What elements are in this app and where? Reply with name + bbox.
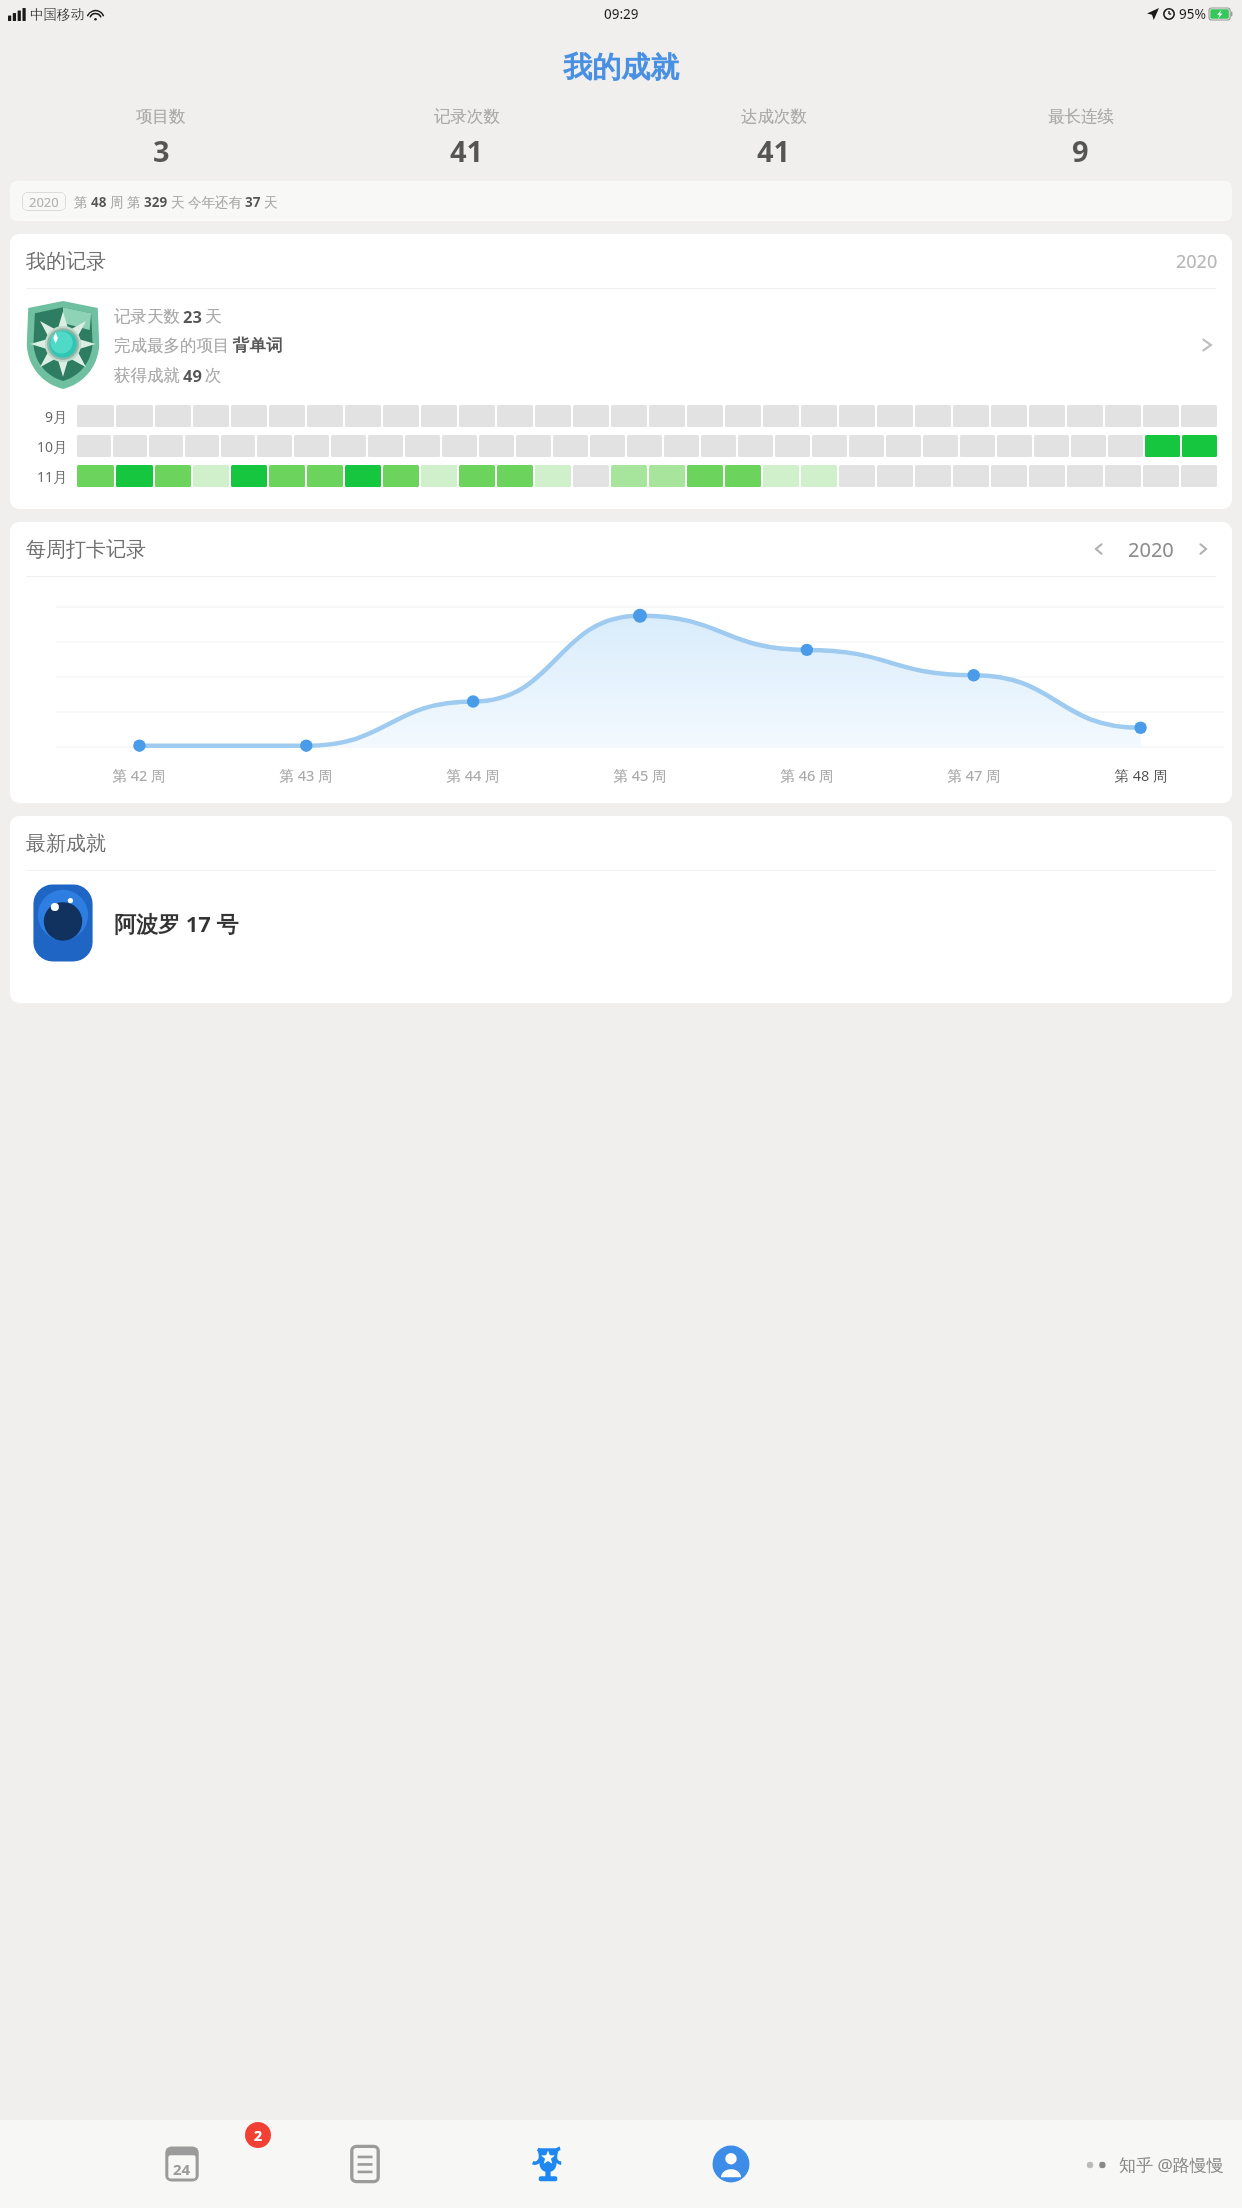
staticText: 记录天数	[114, 306, 180, 327]
staticText: 天	[264, 194, 278, 211]
button[interactable]: 记录天数	[10, 289, 1232, 395]
button[interactable]: 下一年	[1188, 534, 1218, 564]
staticText: 第	[127, 194, 141, 211]
staticText: 第 42 周	[112, 765, 166, 785]
staticText: 知乎 @路慢慢	[1119, 2153, 1224, 2176]
staticText: 10月	[37, 437, 68, 456]
button[interactable]: 达成次数	[620, 106, 927, 170]
staticText: 第 48 周	[1114, 765, 1168, 785]
staticText: 第 44 周	[446, 765, 500, 785]
staticText: 第	[74, 194, 88, 211]
staticText: 我的记录	[26, 249, 106, 274]
button[interactable]: 日历	[90, 2120, 273, 2208]
staticText: 09:29	[604, 5, 639, 23]
staticText: 2020	[1176, 249, 1218, 274]
button[interactable]: 上一年	[1084, 534, 1114, 564]
staticText: 次	[205, 365, 222, 386]
staticText: 95%	[1179, 5, 1206, 23]
staticText: 天	[171, 194, 185, 211]
staticText: 2020	[29, 193, 59, 211]
staticText: 3	[153, 131, 170, 170]
staticText: 49	[183, 364, 202, 386]
staticText: 获得成就	[114, 365, 180, 386]
staticText: 达成次数	[741, 106, 807, 127]
button[interactable]: 清单	[273, 2120, 456, 2208]
button[interactable]: 最长连续	[927, 106, 1234, 170]
button[interactable]: 2020	[10, 181, 1232, 221]
staticText: 完成最多的项目	[114, 335, 230, 356]
staticText: 项目数	[136, 106, 186, 127]
staticText: 第 45 周	[613, 765, 667, 785]
staticText: 2	[254, 2126, 263, 2145]
staticText: 最新成就	[26, 831, 106, 856]
other: 查看详情	[1198, 336, 1216, 354]
staticText: 最长连续	[1048, 106, 1114, 127]
staticText: 37	[245, 193, 261, 211]
staticText: 阿波罗 17 号	[114, 908, 239, 938]
staticText: 11月	[37, 467, 68, 486]
button[interactable]: 记录次数	[314, 106, 620, 170]
staticText: 23	[183, 305, 202, 327]
staticText: 24	[173, 2159, 191, 2179]
staticText: 我的成就	[563, 49, 679, 86]
button[interactable]: 阿波罗 17 号	[10, 871, 1232, 963]
staticText: 2020	[1128, 536, 1174, 563]
staticText: 41	[757, 131, 791, 170]
staticText: 9月	[45, 407, 68, 426]
button[interactable]: 我的	[639, 2120, 822, 2208]
staticText: 41	[450, 131, 484, 170]
staticText: 第 46 周	[780, 765, 834, 785]
staticText: 48	[91, 193, 107, 211]
button[interactable]: 成就	[456, 2120, 639, 2208]
staticText: 周	[110, 194, 124, 211]
staticText: 天	[205, 306, 222, 327]
staticText: 每周打卡记录	[26, 537, 146, 562]
staticText: 背单词	[233, 335, 283, 356]
staticText: 329	[144, 193, 168, 211]
staticText: 今年还有	[188, 194, 242, 211]
staticText: 中国移动	[30, 6, 84, 23]
button[interactable]: 项目数	[8, 106, 314, 170]
staticText: 第 43 周	[279, 765, 333, 785]
staticText: 第 47 周	[947, 765, 1001, 785]
staticText: 9	[1072, 131, 1089, 170]
staticText: 记录次数	[434, 106, 500, 127]
